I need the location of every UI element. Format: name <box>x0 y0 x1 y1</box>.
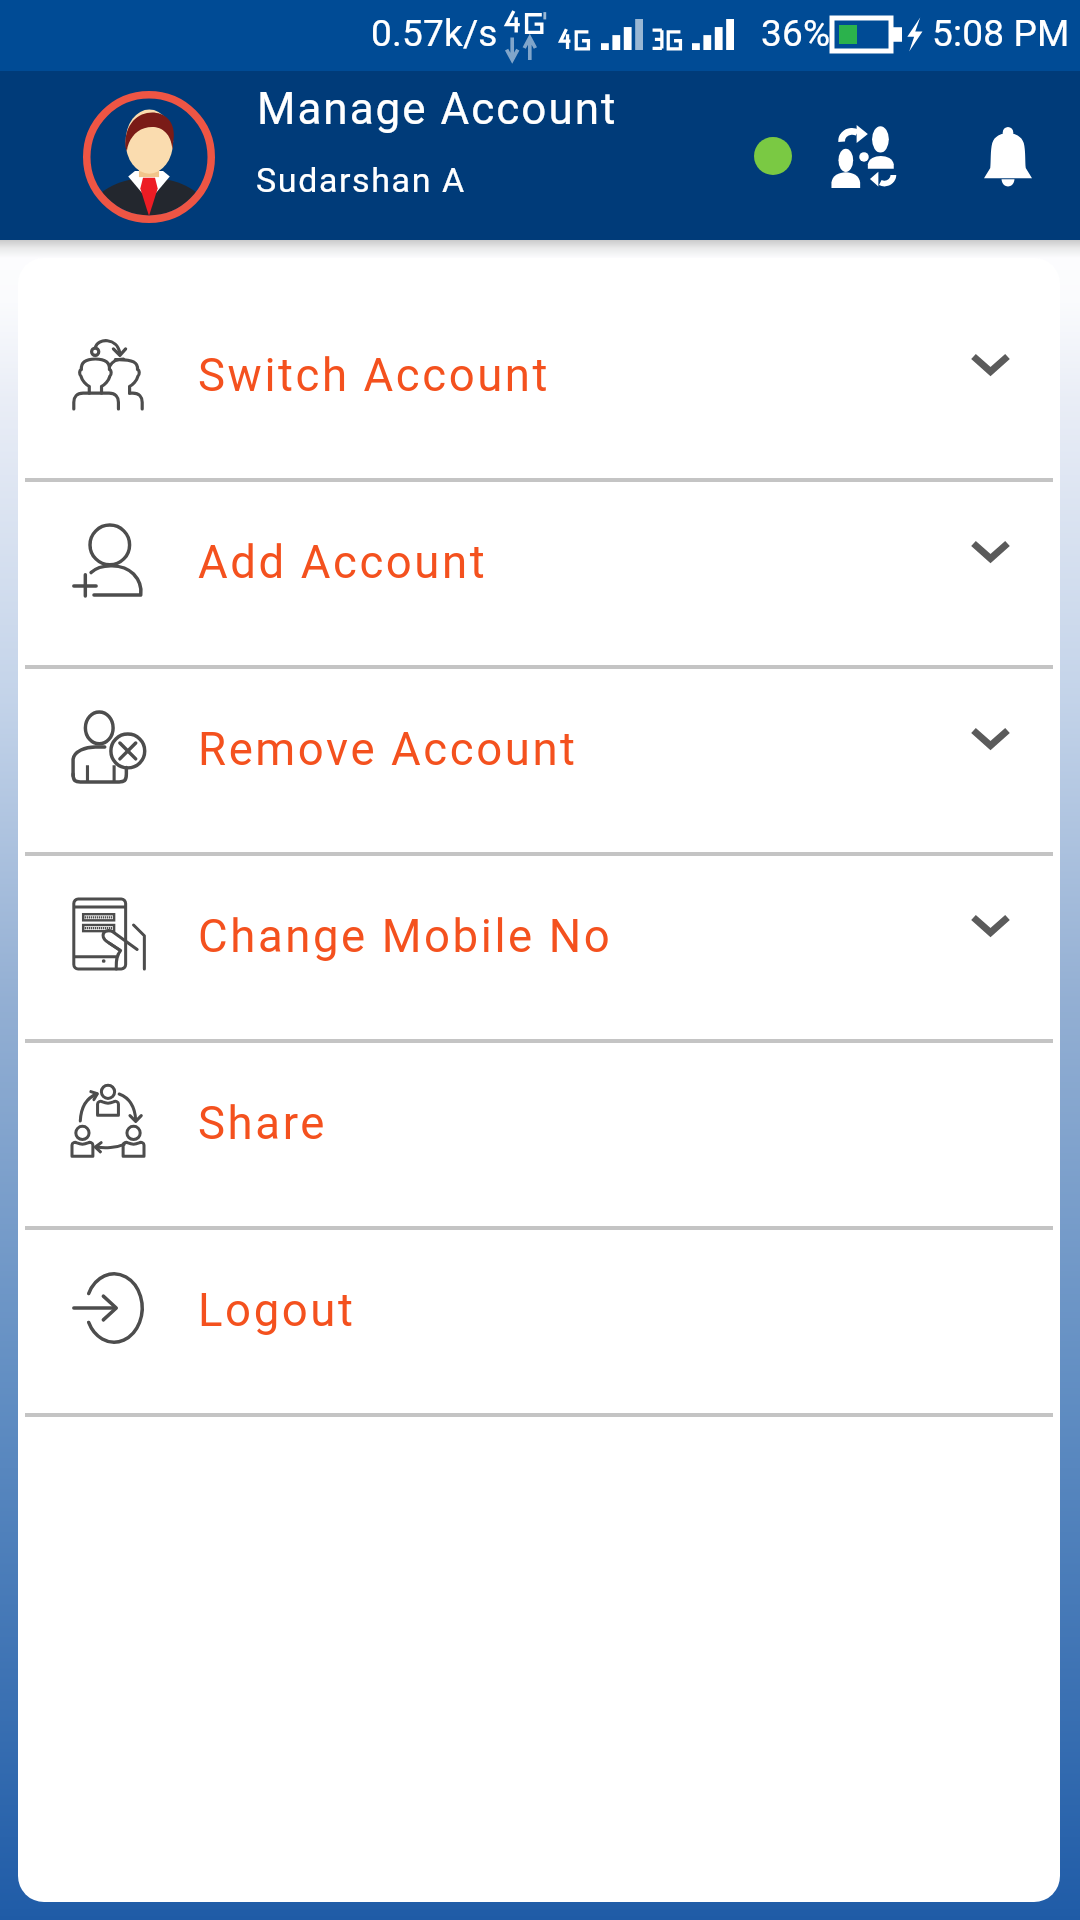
staticText: Logout <box>198 1284 356 1337</box>
button[interactable]: Logout <box>18 1230 1060 1413</box>
button[interactable]: Remove Account <box>18 669 1060 852</box>
button[interactable]: Share <box>18 1043 1060 1226</box>
staticText: Remove Account <box>198 723 578 776</box>
staticText: 5:08 PM <box>932 12 1070 55</box>
staticText: 36% <box>761 12 831 55</box>
staticText: Switch Account <box>198 349 551 402</box>
button[interactable]: Switch Account <box>18 295 1060 478</box>
button[interactable]: Switch user <box>824 116 904 196</box>
staticText: Add Account <box>198 536 488 589</box>
staticText: 0.57k/s <box>371 12 498 55</box>
staticText: Manage Account <box>257 83 618 135</box>
button[interactable]: Add Account <box>18 482 1060 665</box>
staticText: Share <box>198 1097 327 1150</box>
button[interactable]: Change Mobile No <box>18 856 1060 1039</box>
staticText: Sudarshan A <box>256 160 466 200</box>
button[interactable]: Profile photo <box>82 90 216 224</box>
button[interactable]: Notifications <box>968 116 1048 196</box>
staticText: Change Mobile No <box>198 910 613 963</box>
